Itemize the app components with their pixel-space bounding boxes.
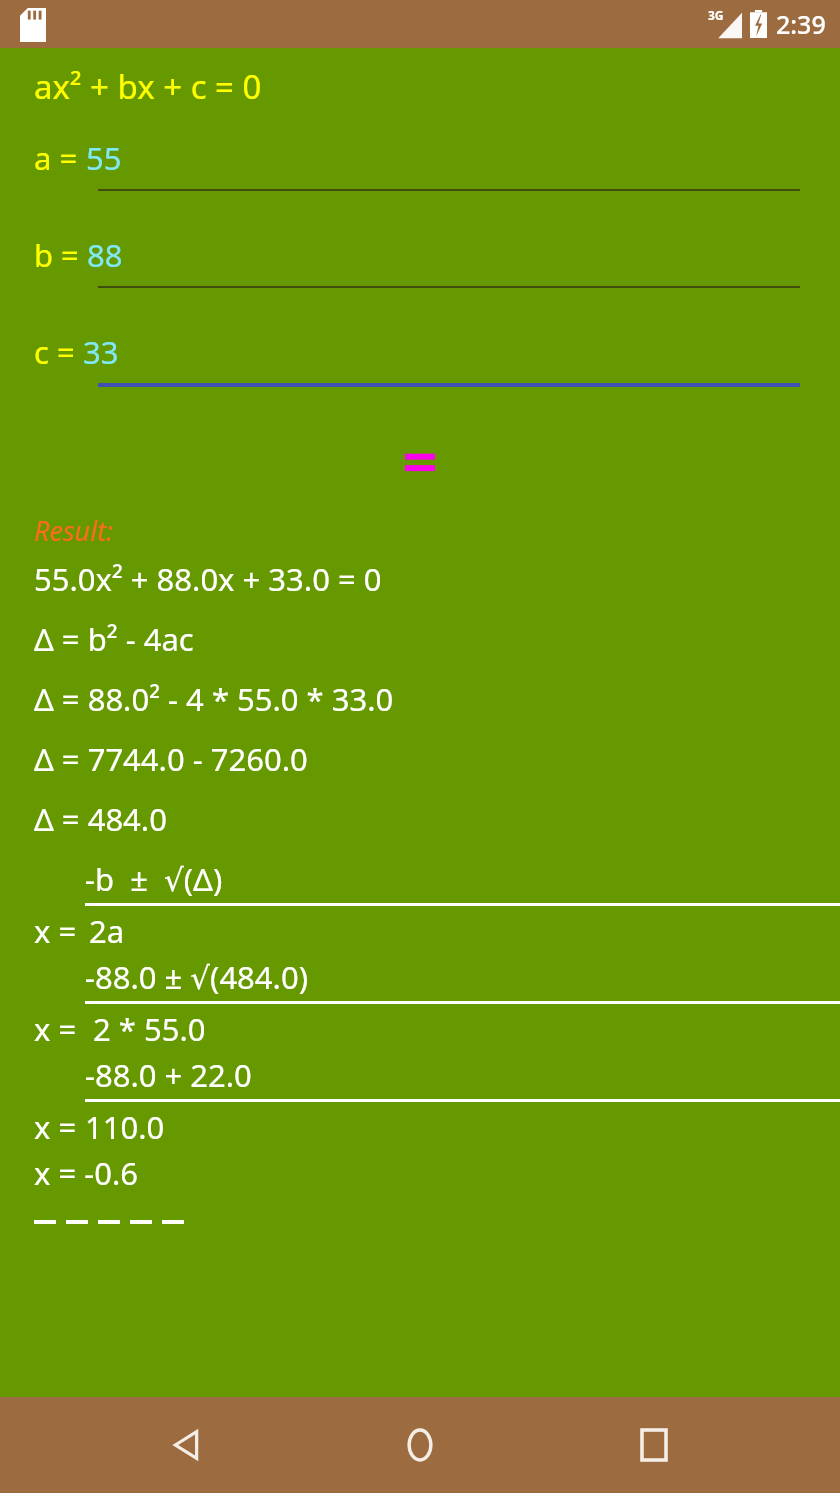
staticText: a = — [34, 137, 86, 179]
button[interactable]: a = — [0, 137, 840, 179]
staticText: 2 * 55.0 — [85, 1008, 206, 1050]
button[interactable]: Home — [372, 1397, 468, 1493]
staticText: 2a — [89, 910, 125, 952]
staticText: b = — [34, 234, 87, 276]
staticText: Δ = b² - 4ac — [34, 618, 194, 660]
button[interactable]: Calculate — [398, 442, 442, 482]
staticText: 2:39 — [776, 7, 826, 41]
button[interactable]: Recent apps — [606, 1397, 702, 1493]
staticText: 55.0x² + 88.0x + 33.0 = 0 — [34, 558, 382, 600]
staticText: 33 — [83, 331, 119, 373]
staticText: 3G — [708, 7, 724, 23]
staticText: x = -0.6 — [34, 1152, 139, 1194]
staticText: Δ = 88.0² - 4 * 55.0 * 33.0 — [34, 678, 394, 720]
staticText: -88.0 ± √(484.0) — [85, 956, 325, 998]
staticText: Result: — [34, 512, 114, 549]
staticText: 110.0 — [85, 1106, 165, 1148]
staticText: x = — [34, 1106, 85, 1148]
button[interactable]: c = — [0, 331, 840, 373]
staticText: x = — [34, 1008, 85, 1050]
staticText: c = — [34, 331, 83, 373]
button[interactable]: b = — [0, 234, 840, 276]
staticText: Δ = 7744.0 - 7260.0 — [34, 738, 308, 780]
staticText: x = — [34, 910, 85, 952]
staticText: ax² + bx + c = 0 — [34, 64, 262, 109]
button[interactable]: Back — [138, 1397, 234, 1493]
staticText: 88 — [87, 234, 123, 276]
staticText: -88.0 + 22.0 — [85, 1054, 341, 1096]
staticText: 55 — [86, 137, 122, 179]
staticText: -b ± √(Δ) — [85, 858, 231, 900]
staticText: Δ = 484.0 — [34, 798, 167, 840]
